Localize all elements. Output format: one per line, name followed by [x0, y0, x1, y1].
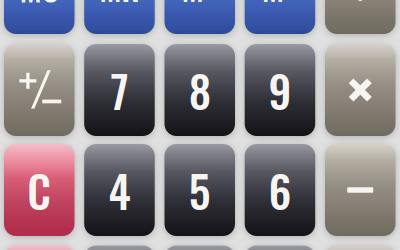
- staticText: 9: [268, 57, 291, 123]
- button[interactable]: 4: [84, 144, 155, 236]
- button[interactable]: MR: [84, 0, 155, 34]
- button[interactable]: 8: [164, 44, 235, 136]
- button[interactable]: 9: [245, 44, 315, 136]
- button[interactable]: 6: [245, 144, 315, 236]
- button[interactable]: 1: [84, 245, 155, 250]
- staticText: 8: [189, 57, 211, 123]
- button[interactable]: M+: [164, 0, 235, 34]
- staticText: 4: [108, 157, 130, 223]
- button[interactable]: 3: [245, 245, 315, 250]
- button[interactable]: Multiply: [325, 44, 395, 136]
- staticText: MC: [20, 0, 59, 12]
- staticText: 7: [110, 57, 128, 123]
- staticText: 6: [268, 157, 291, 223]
- button[interactable]: MC: [4, 0, 74, 34]
- staticText: MR: [99, 0, 139, 12]
- button[interactable]: 5: [164, 144, 235, 236]
- staticText: M−: [262, 0, 298, 12]
- button[interactable]: Plus minus: [4, 44, 74, 136]
- button[interactable]: %: [4, 245, 74, 250]
- button[interactable]: 7: [84, 44, 155, 136]
- button[interactable]: C: [4, 144, 74, 236]
- button[interactable]: Subtract: [325, 144, 395, 236]
- staticText: C: [27, 157, 51, 223]
- button[interactable]: Add: [325, 245, 395, 250]
- staticText: 5: [189, 157, 211, 223]
- button[interactable]: Divide: [325, 0, 395, 34]
- staticText: M+: [182, 0, 218, 12]
- button[interactable]: 2: [164, 245, 235, 250]
- button[interactable]: M−: [245, 0, 315, 34]
